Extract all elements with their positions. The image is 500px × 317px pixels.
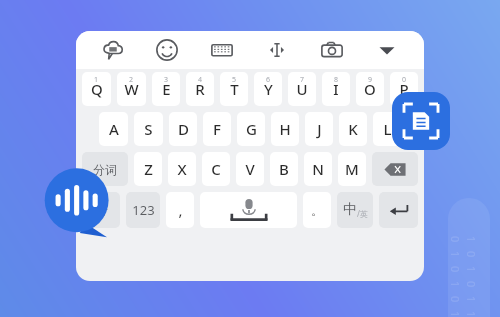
staticText: V <box>245 159 255 179</box>
staticText: 123 <box>132 201 155 219</box>
staticText: Z <box>144 159 153 179</box>
staticText: 9 <box>368 75 373 85</box>
button[interactable]: Voice input <box>44 169 112 237</box>
button[interactable]: U <box>288 72 316 106</box>
staticText: E <box>162 79 171 99</box>
staticText: 0 <box>402 75 407 85</box>
staticText: 5 <box>232 75 237 85</box>
button[interactable]: 123 <box>126 192 160 228</box>
staticText: 1 <box>464 266 479 273</box>
staticText: 0 <box>448 296 463 303</box>
staticText: 1 <box>448 281 463 288</box>
button[interactable]: Scan text <box>392 92 450 150</box>
staticText: W <box>124 79 139 99</box>
staticText: 2 <box>129 75 134 85</box>
staticText: H <box>279 119 291 139</box>
button[interactable]: S <box>134 112 163 146</box>
button[interactable]: Q <box>82 72 111 106</box>
staticText: 8 <box>334 75 339 85</box>
staticText: 1 <box>448 251 463 258</box>
button[interactable]: N <box>304 152 332 186</box>
button[interactable]: Y <box>254 72 282 106</box>
button[interactable]: I <box>322 72 350 106</box>
button[interactable]: A <box>99 112 128 146</box>
staticText: P <box>399 79 409 99</box>
button[interactable]: Cursor move <box>249 31 304 69</box>
button[interactable]: , <box>166 192 194 228</box>
staticText: 0 <box>448 236 463 243</box>
staticText: 4 <box>198 75 203 85</box>
staticText: T <box>230 79 239 99</box>
staticText: , <box>178 200 183 220</box>
staticText: Q <box>91 79 103 99</box>
staticText: S <box>144 119 153 139</box>
staticText: A <box>109 119 119 139</box>
button[interactable]: W <box>117 72 146 106</box>
button[interactable]: 分词 <box>82 152 128 186</box>
staticText: K <box>348 119 358 139</box>
button[interactable]: Voice cloud <box>86 31 140 69</box>
staticText: G <box>246 119 257 139</box>
staticText: 。 <box>311 203 323 218</box>
button[interactable]: More <box>359 31 414 69</box>
button[interactable]: R <box>186 72 214 106</box>
button[interactable]: Enter <box>379 192 418 228</box>
staticText: B <box>279 159 289 179</box>
button[interactable]: P <box>390 72 418 106</box>
staticText: U <box>296 79 308 99</box>
staticText: N <box>312 159 324 179</box>
staticText: F <box>213 119 221 139</box>
button[interactable]: G <box>237 112 265 146</box>
staticText: 0 <box>464 281 479 288</box>
button[interactable]: Emoji <box>140 31 194 69</box>
staticText: M <box>345 159 359 179</box>
staticText: 中 <box>343 201 357 219</box>
button[interactable]: 符 <box>82 192 120 228</box>
button[interactable]: 。 <box>303 192 331 228</box>
button[interactable]: K <box>339 112 367 146</box>
staticText: /英 <box>357 208 368 219</box>
staticText: 7 <box>300 75 305 85</box>
button[interactable]: F <box>203 112 231 146</box>
staticText: O <box>364 79 376 99</box>
button[interactable]: B <box>270 152 298 186</box>
button[interactable]: T <box>220 72 248 106</box>
staticText: 分词 <box>93 162 117 177</box>
staticText: L <box>383 119 392 139</box>
staticText: 1 <box>448 311 463 317</box>
button[interactable]: O <box>356 72 384 106</box>
staticText: 1 <box>464 311 479 317</box>
other: Enter <box>389 202 409 218</box>
button[interactable]: E <box>152 72 180 106</box>
button[interactable]: Backspace <box>372 152 418 186</box>
button[interactable]: L <box>373 112 401 146</box>
staticText: 1 <box>94 75 99 85</box>
other: Space, voice input <box>223 198 275 222</box>
staticText: J <box>317 119 322 139</box>
button[interactable]: C <box>202 152 230 186</box>
staticText: D <box>178 119 189 139</box>
button[interactable]: D <box>169 112 197 146</box>
button[interactable]: J <box>305 112 333 146</box>
staticText: Y <box>264 79 273 99</box>
staticText: 1 <box>464 296 479 303</box>
staticText: 0 <box>448 266 463 273</box>
staticText: 6 <box>266 75 271 85</box>
other: Backspace <box>384 162 406 177</box>
button[interactable]: V <box>236 152 264 186</box>
staticText: 符 <box>94 201 108 219</box>
button[interactable]: Space, voice input <box>200 192 297 228</box>
staticText: 3 <box>164 75 169 85</box>
button[interactable]: M <box>338 152 366 186</box>
button[interactable]: H <box>271 112 299 146</box>
button[interactable]: X <box>168 152 196 186</box>
staticText: I <box>333 79 339 99</box>
staticText: 1 <box>464 236 479 243</box>
button[interactable]: Z <box>134 152 162 186</box>
button[interactable]: Camera input <box>304 31 359 69</box>
button[interactable]: 中 <box>337 192 373 228</box>
staticText: 0 <box>464 251 479 258</box>
staticText: C <box>211 159 221 179</box>
staticText: X <box>177 159 187 179</box>
button[interactable]: Keyboard layout <box>194 31 249 69</box>
